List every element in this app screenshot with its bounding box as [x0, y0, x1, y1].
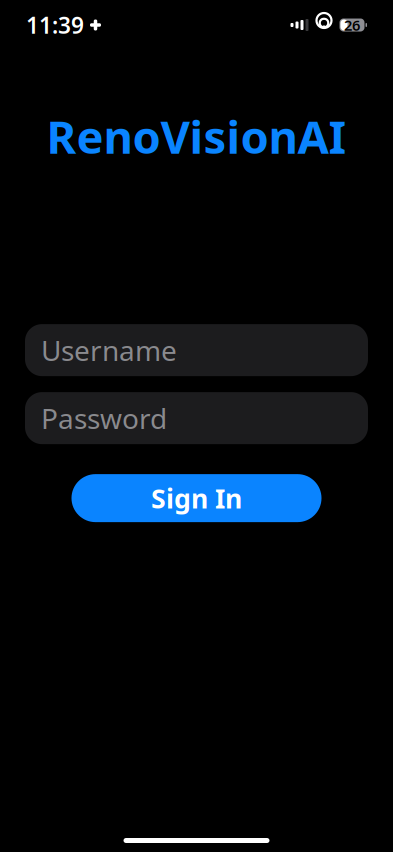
button[interactable]: Username	[25, 324, 368, 376]
button[interactable]: Sign In	[71, 474, 321, 522]
staticText: RenoVisionAI	[46, 106, 346, 166]
staticText: 11:39	[26, 10, 84, 40]
staticText: Password	[41, 399, 167, 437]
staticText: Username	[41, 331, 177, 369]
staticText: 26	[344, 15, 360, 35]
staticText: Sign In	[151, 480, 242, 516]
button[interactable]: Password	[25, 392, 368, 444]
